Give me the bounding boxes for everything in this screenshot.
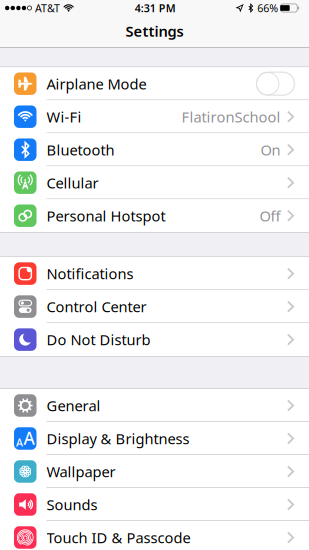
button[interactable]: Control Center — [0, 290, 309, 323]
staticText: General — [46, 396, 100, 415]
staticText: 66% — [257, 1, 278, 15]
staticText: AT&T — [35, 1, 60, 15]
button[interactable]: Notifications — [0, 257, 309, 290]
button[interactable]: Sounds — [0, 488, 309, 521]
staticText: Cellular — [46, 173, 98, 192]
button[interactable]: Wallpaper — [0, 455, 309, 488]
staticText: FlatironSchool — [181, 107, 280, 126]
button[interactable]: Bluetooth — [0, 133, 309, 166]
button[interactable]: Do Not Disturb — [0, 323, 309, 356]
button[interactable]: Touch ID & Passcode — [0, 521, 309, 550]
staticText: Wi-Fi — [46, 107, 81, 126]
button[interactable]: Cellular — [0, 166, 309, 199]
staticText: Control Center — [46, 297, 146, 316]
button[interactable]: General — [0, 389, 309, 422]
button[interactable]: Wi-Fi — [0, 100, 309, 133]
staticText: Touch ID & Passcode — [46, 528, 190, 547]
button[interactable]: Personal Hotspot — [0, 199, 309, 232]
staticText: A — [24, 426, 35, 449]
staticText: Do Not Disturb — [46, 330, 150, 349]
button[interactable]: Airplane Mode — [0, 67, 309, 100]
staticText: On — [260, 140, 280, 159]
button[interactable]: A — [0, 422, 309, 455]
staticText: Personal Hotspot — [46, 206, 165, 225]
staticText: Display & Brightness — [46, 429, 189, 448]
staticText: Bluetooth — [46, 140, 114, 159]
staticText: A — [16, 435, 23, 449]
staticText: Off — [259, 206, 280, 225]
staticText: 4:31 PM — [135, 1, 176, 15]
staticText: Notifications — [46, 264, 133, 283]
staticText: Wallpaper — [46, 462, 115, 481]
staticText: Settings — [125, 21, 183, 41]
staticText: Airplane Mode — [46, 74, 146, 93]
staticText: Sounds — [46, 495, 97, 514]
